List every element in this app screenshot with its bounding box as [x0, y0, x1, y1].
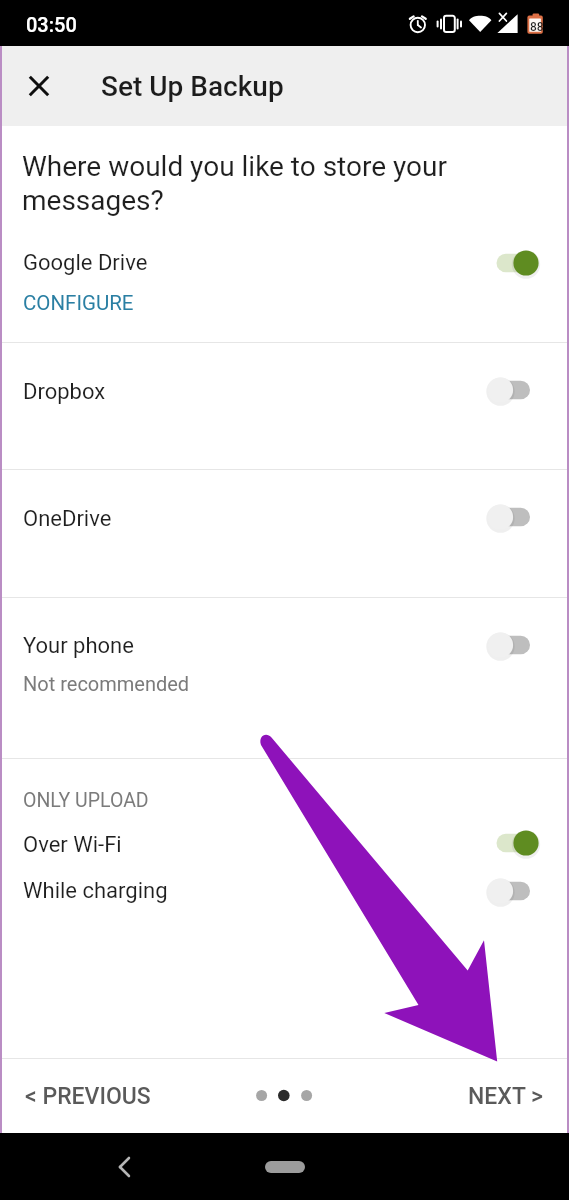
staticText: Your phone — [23, 633, 134, 659]
staticText: OneDrive — [23, 506, 112, 532]
staticText: Not recommended — [23, 672, 190, 695]
staticText: Set Up Backup — [101, 70, 284, 103]
button[interactable]: Back — [105, 1147, 145, 1187]
button[interactable]: Google Drive — [0, 232, 569, 342]
staticText: ONLY UPLOAD — [23, 789, 149, 812]
staticText: 03:50 — [26, 13, 77, 36]
staticText: While charging — [23, 878, 168, 904]
staticText: Dropbox — [23, 379, 106, 405]
staticText: 88 — [530, 20, 544, 34]
staticText: Google Drive — [23, 250, 148, 276]
button[interactable]: Dropbox — [0, 343, 569, 469]
button[interactable]: OneDrive — [0, 470, 569, 597]
button[interactable]: Over Wi-Fi — [0, 820, 569, 866]
staticText: Over Wi-Fi — [23, 832, 122, 858]
button[interactable]: While charging — [0, 868, 569, 916]
staticText: CONFIGURE — [23, 291, 134, 315]
button[interactable]: Your phone — [0, 598, 569, 758]
staticText: < PREVIOUS — [25, 1083, 151, 1110]
button[interactable]: Close — [17, 64, 61, 108]
button[interactable]: Home — [265, 1161, 305, 1173]
button[interactable]: < PREVIOUS — [0, 1069, 173, 1124]
button[interactable]: NEXT > — [446, 1069, 569, 1124]
staticText: NEXT > — [468, 1083, 543, 1110]
staticText: Where would you like to store your messa… — [22, 150, 447, 217]
